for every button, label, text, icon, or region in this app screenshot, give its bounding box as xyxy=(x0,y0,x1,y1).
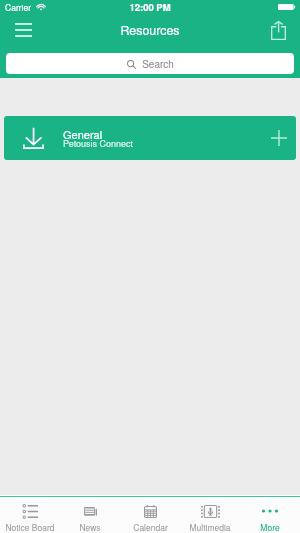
staticText: Petousis Connect xyxy=(63,137,134,150)
staticText: General xyxy=(63,126,103,142)
staticText: Search xyxy=(142,57,174,71)
button[interactable]: Multimedia xyxy=(180,495,240,533)
button[interactable]: Share xyxy=(256,13,300,46)
button[interactable]: News xyxy=(60,495,120,533)
button[interactable]: Calendar xyxy=(120,495,180,533)
staticText: 12:00 PM xyxy=(129,0,171,13)
button[interactable]: Search xyxy=(6,53,294,74)
staticText: Resources xyxy=(120,21,180,39)
button[interactable]: General xyxy=(4,116,296,160)
button[interactable]: More xyxy=(240,495,300,533)
staticText: Carrier xyxy=(5,1,31,13)
button[interactable]: Notice Board xyxy=(0,495,60,533)
staticText: News xyxy=(79,521,101,533)
staticText: Multimedia xyxy=(189,521,231,533)
staticText: More xyxy=(260,521,280,533)
button[interactable]: Menu xyxy=(0,13,46,46)
staticText: Calendar xyxy=(133,521,168,533)
staticText: Notice Board xyxy=(5,521,55,533)
